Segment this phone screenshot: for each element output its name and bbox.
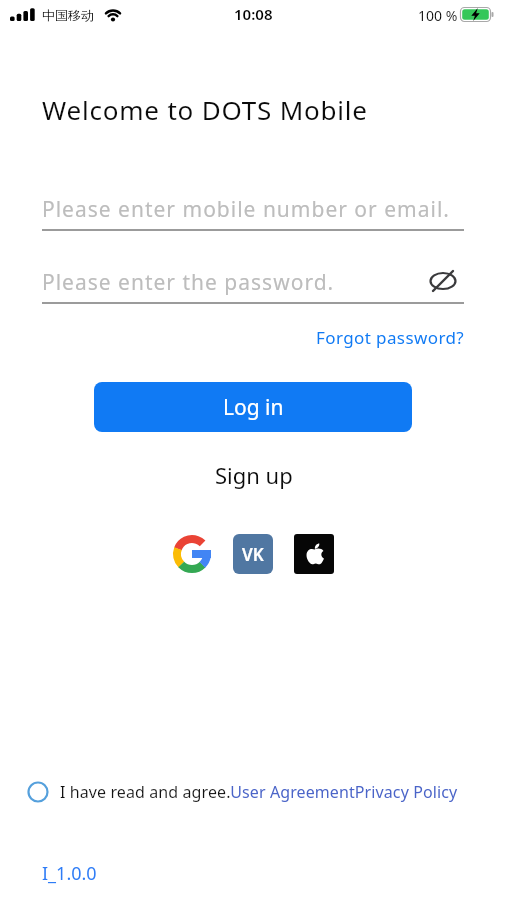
button[interactable]: I_1.0.0: [42, 861, 97, 886]
staticText: I have read and agree.User AgreementPriv…: [60, 781, 458, 803]
button[interactable]: [294, 534, 334, 574]
staticText: 10:08: [234, 4, 273, 24]
staticText: 中国移动: [42, 7, 94, 23]
button[interactable]: Log in: [94, 382, 412, 432]
button[interactable]: [173, 535, 211, 573]
staticText: Welcome to DOTS Mobile: [42, 92, 368, 127]
button[interactable]: Sign up: [215, 460, 293, 490]
staticText: 100 %: [418, 6, 458, 25]
button[interactable]: VK: [233, 534, 273, 574]
staticText: VK: [242, 543, 264, 566]
button[interactable]: Forgot password?: [316, 326, 465, 349]
staticText: Please enter the password.: [42, 268, 335, 297]
staticText: Please enter mobile number or email.: [42, 195, 450, 224]
button[interactable]: [429, 268, 457, 294]
staticText: Log in: [223, 393, 284, 422]
button[interactable]: I have read and agree.User AgreementPriv…: [27, 781, 458, 803]
